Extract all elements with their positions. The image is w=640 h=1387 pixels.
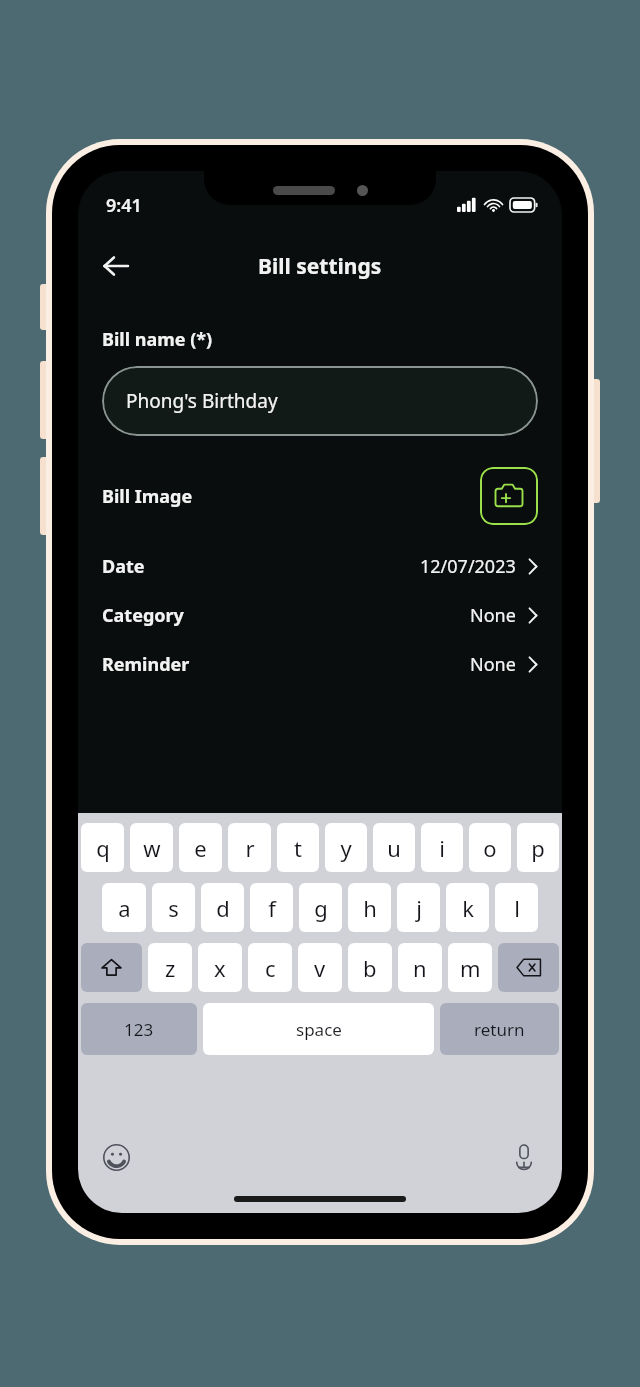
staticText: p [531, 833, 545, 863]
button[interactable]: o [469, 823, 511, 872]
staticText: x [214, 953, 226, 983]
staticText: i [439, 833, 445, 863]
button[interactable]: d [201, 883, 244, 932]
button[interactable]: r [228, 823, 271, 872]
button[interactable]: l [495, 883, 538, 932]
staticText: w [143, 833, 161, 863]
staticText: Bill Image [102, 484, 193, 509]
staticText: u [387, 833, 401, 863]
staticText: a [118, 893, 131, 923]
button[interactable]: y [325, 823, 367, 872]
staticText: v [314, 953, 326, 983]
button[interactable]: b [348, 943, 392, 992]
button[interactable]: v [298, 943, 342, 992]
button[interactable]: j [397, 883, 440, 932]
staticText: k [462, 893, 474, 923]
staticText: q [96, 833, 110, 863]
staticText: l [514, 893, 520, 923]
staticText: t [294, 833, 302, 863]
staticText: 12/07/2023 [420, 554, 516, 579]
button[interactable]: s [152, 883, 195, 932]
button[interactable]: h [348, 883, 391, 932]
button[interactable]: z [148, 943, 192, 992]
staticText: Bill name (*) [102, 327, 213, 352]
staticText: None [470, 603, 516, 628]
staticText: n [413, 953, 427, 983]
staticText: y [340, 833, 352, 863]
button[interactable]: Category [102, 591, 538, 640]
button[interactable]: Emoji [96, 1137, 136, 1177]
button[interactable]: q [81, 823, 124, 872]
staticText: s [168, 893, 179, 923]
staticText: b [363, 953, 377, 983]
staticText: 9:41 [106, 193, 142, 218]
button[interactable]: return [440, 1003, 559, 1055]
staticText: j [416, 893, 422, 923]
staticText: e [194, 833, 207, 863]
button[interactable]: x [198, 943, 242, 992]
staticText: r [245, 833, 255, 863]
button[interactable]: Backspace [498, 943, 559, 992]
button[interactable]: e [179, 823, 222, 872]
staticText: return [474, 1018, 525, 1041]
staticText: Category [102, 603, 184, 628]
staticText: c [265, 953, 276, 983]
button[interactable]: f [250, 883, 293, 932]
staticText: h [363, 893, 377, 923]
staticText: None [470, 652, 516, 677]
button[interactable]: w [130, 823, 173, 872]
staticText: g [314, 893, 328, 923]
button[interactable]: Date [102, 542, 538, 591]
staticText: Bill settings [258, 252, 382, 281]
staticText: Phong's Birthday [126, 388, 278, 414]
button[interactable]: u [373, 823, 415, 872]
staticText: Date [102, 554, 145, 579]
staticText: m [460, 953, 481, 983]
button[interactable]: Reminder [102, 640, 538, 689]
button[interactable]: a [102, 883, 146, 932]
button[interactable]: m [448, 943, 492, 992]
button[interactable]: p [517, 823, 559, 872]
staticText: o [483, 833, 497, 863]
button[interactable]: i [421, 823, 463, 872]
button[interactable]: Phong's Birthday [102, 366, 538, 436]
button[interactable]: t [277, 823, 319, 872]
button[interactable]: n [398, 943, 442, 992]
button[interactable]: Dictation [504, 1137, 544, 1177]
staticText: z [165, 953, 176, 983]
staticText: space [296, 1018, 342, 1041]
button[interactable]: 123 [81, 1003, 197, 1055]
button[interactable]: Shift [81, 943, 142, 992]
button[interactable]: Back [90, 240, 142, 292]
button[interactable]: space [203, 1003, 434, 1055]
staticText: f [268, 893, 276, 923]
staticText: d [216, 893, 230, 923]
button[interactable]: g [299, 883, 342, 932]
staticText: 123 [124, 1018, 154, 1041]
button[interactable]: k [446, 883, 489, 932]
button[interactable]: c [248, 943, 292, 992]
button[interactable]: Add bill image [480, 467, 538, 525]
staticText: Reminder [102, 652, 190, 677]
